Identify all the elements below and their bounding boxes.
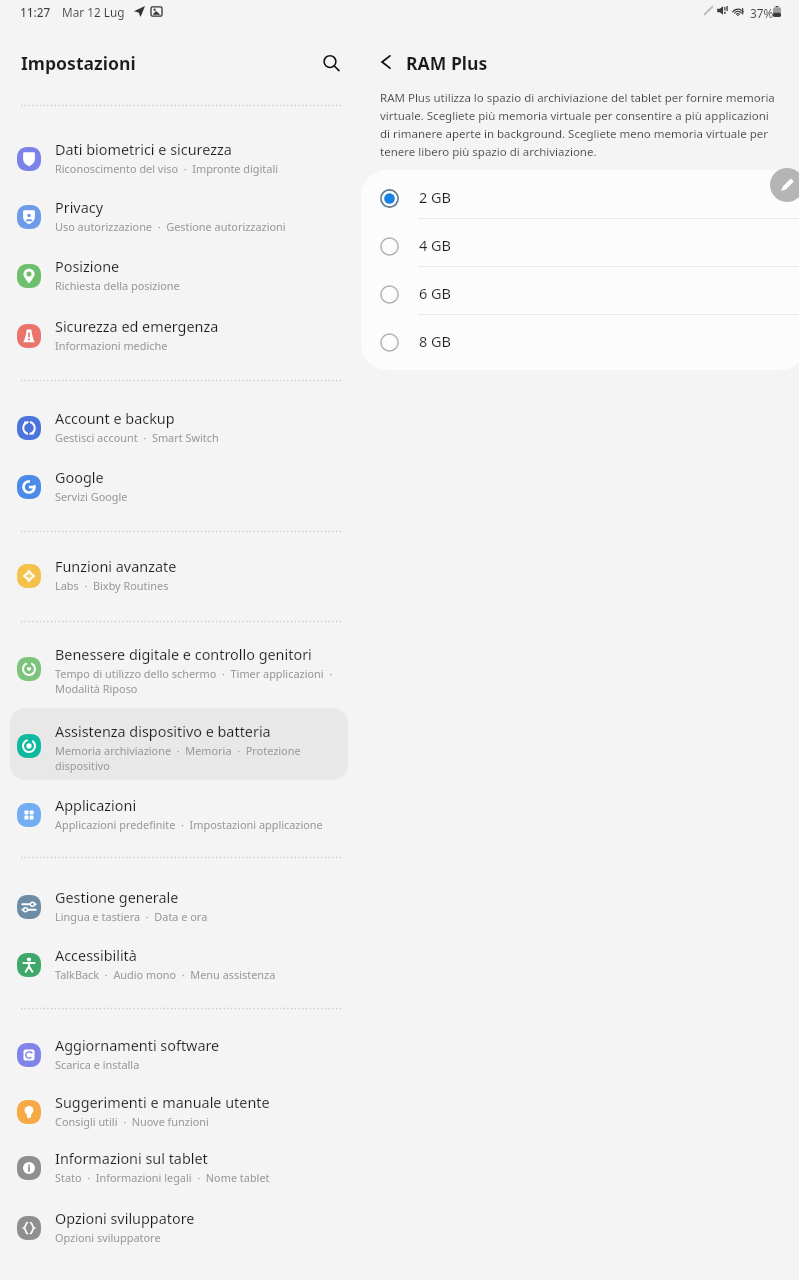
button[interactable]: Benessere digitale e controllo genitori	[10, 631, 348, 703]
staticText: Opzioni sviluppatore	[55, 1209, 195, 1229]
staticText: Funzioni avanzate	[55, 557, 177, 577]
staticText: Account e backup	[55, 409, 175, 429]
staticText: RAM Plus	[406, 51, 488, 75]
staticText: Tempo di utilizzo dello schermo · Timer …	[55, 666, 333, 681]
staticText: Mar 12 Lug	[62, 4, 125, 20]
staticText: Gestisci account · Smart Switch	[55, 430, 219, 445]
staticText: Aggiornamenti software	[55, 1036, 220, 1056]
button[interactable]: Aggiornamenti software	[10, 1026, 348, 1080]
button[interactable]: 4 GB	[361, 222, 799, 270]
staticText: Lingua e tastiera · Data e ora	[55, 909, 208, 924]
button[interactable]: Dati biometrici e sicurezza	[10, 130, 348, 184]
staticText: Richiesta della posizione	[55, 278, 180, 293]
button[interactable]: Funzioni avanzate	[10, 547, 348, 601]
button[interactable]: 6 GB	[361, 270, 799, 318]
staticText: Labs · Bixby Routines	[55, 578, 169, 593]
button[interactable]: Indietro	[368, 44, 404, 80]
button[interactable]: Privacy	[10, 188, 348, 242]
staticText: 2 GB	[419, 187, 452, 207]
staticText: 4 GB	[419, 235, 452, 255]
staticText: Modalità Riposo	[55, 681, 138, 696]
staticText: Informazioni sul tablet	[55, 1149, 208, 1169]
staticText: Uso autorizzazione · Gestione autorizzaz…	[55, 219, 286, 234]
button[interactable]: Posizione	[10, 247, 348, 301]
staticText: Consigli utili · Nuove funzioni	[55, 1114, 209, 1129]
staticText: Google	[55, 468, 104, 488]
staticText: Privacy	[55, 198, 103, 218]
staticText: Applicazioni predefinite · Impostazioni …	[55, 817, 323, 832]
button[interactable]: Informazioni sul tablet	[10, 1139, 348, 1193]
staticText: Posizione	[55, 257, 120, 277]
button[interactable]: Suggerimenti e manuale utente	[10, 1083, 348, 1137]
staticText: 8 GB	[419, 331, 452, 351]
staticText: Riconoscimento del viso · Impronte digit…	[55, 161, 279, 176]
staticText: Impostazioni	[21, 51, 136, 75]
button[interactable]: Applicazioni	[10, 786, 348, 840]
button[interactable]: Modifica	[770, 168, 799, 202]
staticText: 6 GB	[419, 283, 452, 303]
staticText: Scarica e installa	[55, 1057, 140, 1072]
button[interactable]: Sicurezza ed emergenza	[10, 307, 348, 361]
button[interactable]: Google	[10, 458, 348, 512]
staticText: TalkBack · Audio mono · Menu assistenza	[55, 967, 276, 982]
staticText: 11:27	[20, 4, 51, 20]
staticText: Informazioni mediche	[55, 338, 168, 353]
staticText: Opzioni sviluppatore	[55, 1230, 161, 1245]
staticText: Accessibilità	[55, 946, 137, 966]
button[interactable]: Opzioni sviluppatore	[10, 1199, 348, 1253]
button[interactable]: Cerca	[312, 44, 350, 82]
staticText: Servizi Google	[55, 489, 128, 504]
staticText: Benessere digitale e controllo genitori	[55, 645, 312, 665]
staticText: 37%	[750, 5, 774, 21]
button[interactable]: Account e backup	[10, 399, 348, 453]
button[interactable]: 8 GB	[361, 318, 799, 366]
staticText: dispositivo	[55, 758, 110, 773]
staticText: Memoria archiviazione · Memoria · Protez…	[55, 743, 301, 758]
staticText: Dati biometrici e sicurezza	[55, 140, 232, 160]
button[interactable]: Accessibilità	[10, 936, 348, 990]
button[interactable]: Gestione generale	[10, 878, 348, 932]
button[interactable]: 2 GB	[361, 174, 799, 222]
button[interactable]: Assistenza dispositivo e batteria	[10, 708, 348, 780]
staticText: Stato · Informazioni legali · Nome table…	[55, 1170, 270, 1185]
staticText: Sicurezza ed emergenza	[55, 317, 219, 337]
staticText: Suggerimenti e manuale utente	[55, 1093, 270, 1113]
staticText: Applicazioni	[55, 796, 137, 816]
staticText: RAM Plus utilizza lo spazio di archiviaz…	[380, 90, 775, 159]
staticText: Assistenza dispositivo e batteria	[55, 722, 271, 742]
staticText: Gestione generale	[55, 888, 179, 908]
